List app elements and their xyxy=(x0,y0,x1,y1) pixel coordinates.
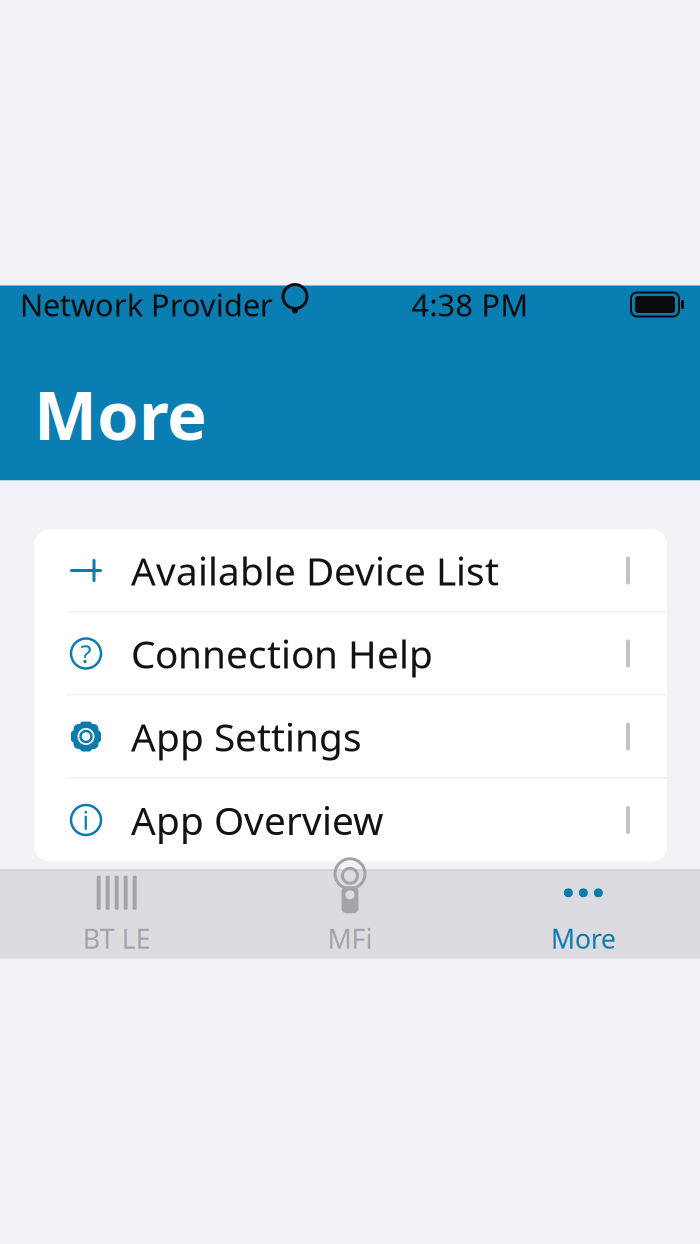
staticText: 4:38 PM xyxy=(411,284,528,325)
button[interactable]: App Settings xyxy=(34,695,667,778)
staticText: BT LE xyxy=(83,921,151,956)
staticText: App Settings xyxy=(131,711,362,762)
button[interactable]: More xyxy=(467,870,700,958)
button[interactable]: i xyxy=(34,778,667,861)
staticText: More xyxy=(551,921,616,956)
staticText: i xyxy=(82,803,89,837)
button[interactable]: BT LE xyxy=(0,870,233,958)
staticText: More xyxy=(34,370,207,458)
staticText: Connection Help xyxy=(131,628,433,679)
staticText: Network Provider xyxy=(20,284,273,325)
button[interactable]: Available Device List xyxy=(34,529,667,612)
button[interactable]: MFi xyxy=(233,870,467,958)
button[interactable]: ? xyxy=(34,612,667,695)
staticText: MFi xyxy=(327,921,372,956)
staticText: Available Device List xyxy=(131,545,499,596)
staticText: ? xyxy=(80,637,91,670)
staticText: App Overview xyxy=(131,794,383,846)
